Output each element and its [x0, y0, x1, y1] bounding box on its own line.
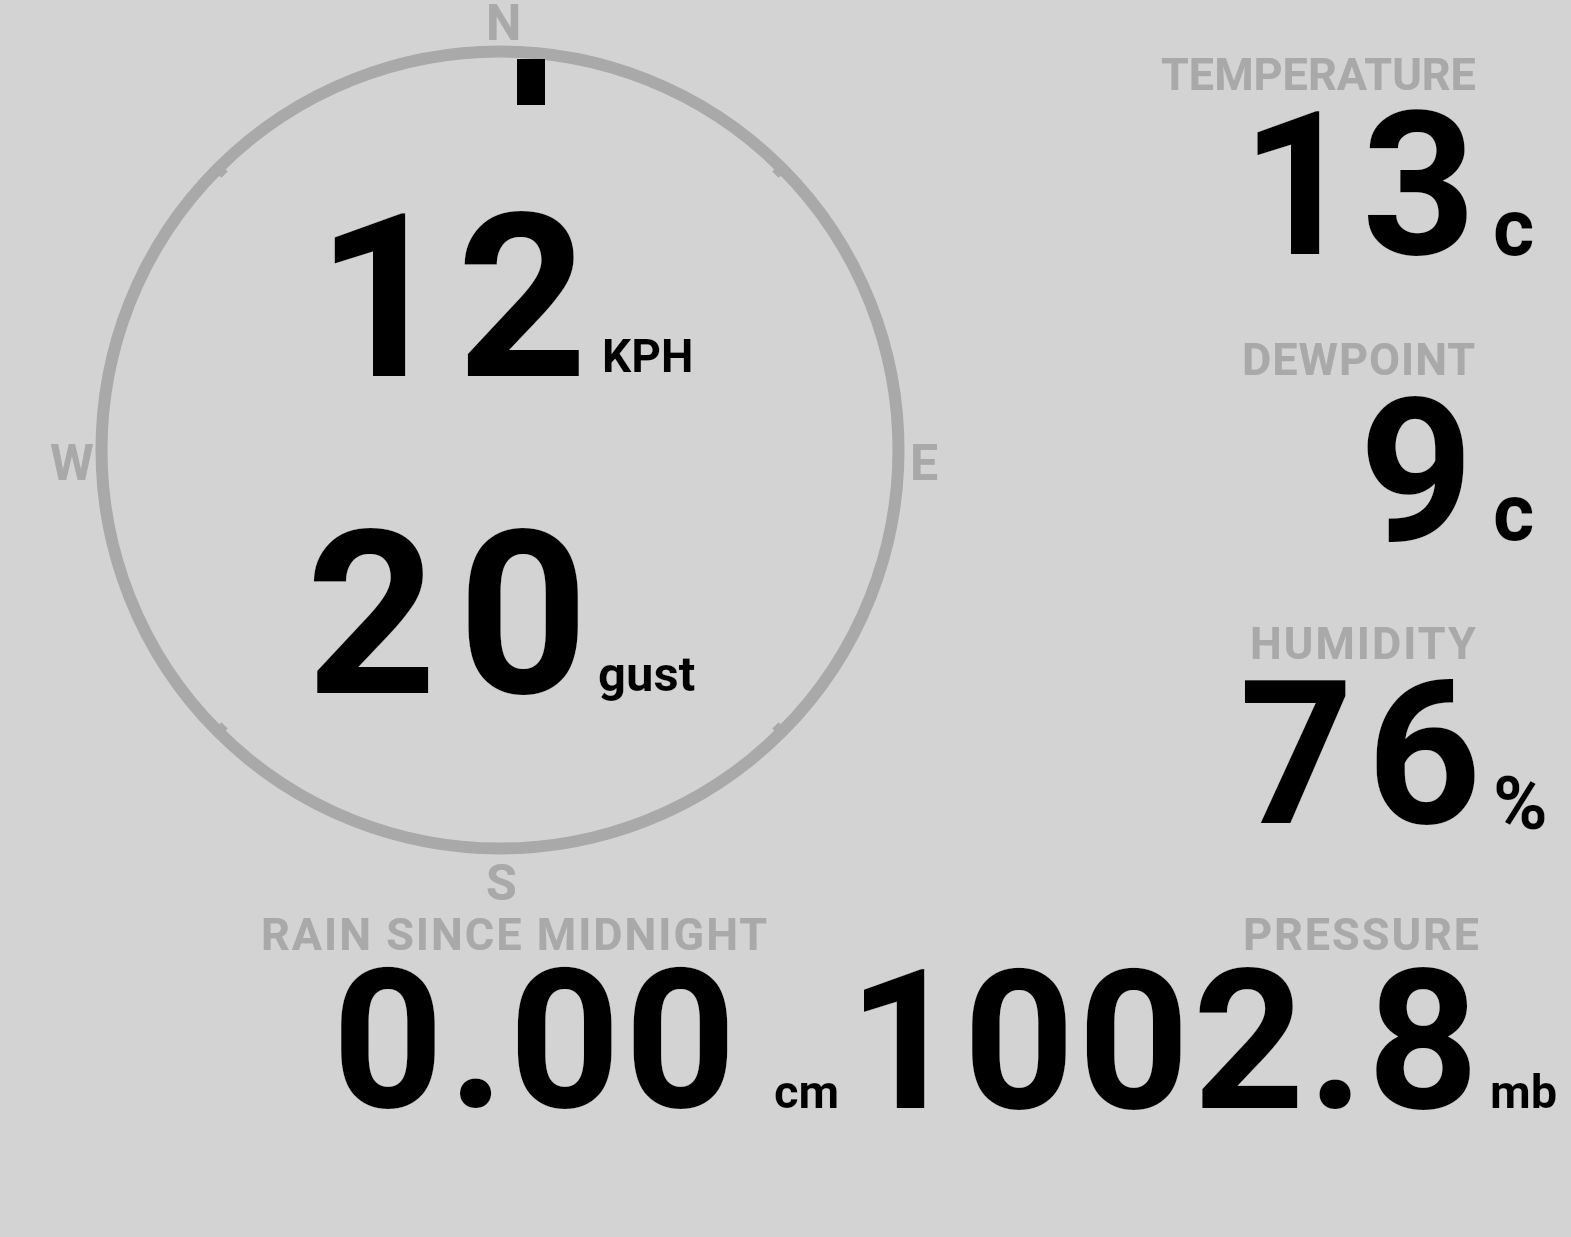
staticText: gust	[598, 646, 696, 703]
button[interactable]: Dew point 9 c	[1150, 330, 1570, 600]
staticText: mb	[1490, 1064, 1558, 1119]
staticText: 12	[316, 164, 598, 431]
staticText: N	[486, 0, 522, 53]
staticText: PRESSURE	[1243, 908, 1482, 961]
staticText: c	[1493, 182, 1535, 275]
staticText: 1002.8	[848, 927, 1483, 1156]
staticText: 76	[1239, 637, 1495, 871]
staticText: 0.00	[332, 926, 741, 1155]
button[interactable]: Wind 12 KPH, gusting 20	[95, 45, 905, 855]
staticText: RAIN SINCE MIDNIGHT	[261, 908, 770, 961]
button[interactable]: Pressure 1002.8 mb	[845, 905, 1570, 1120]
staticText: KPH	[602, 329, 694, 383]
button[interactable]: Temperature 13 c	[1150, 45, 1570, 315]
button[interactable]: Rain since midnight 0.00 cm	[255, 905, 845, 1120]
staticText: 9	[1359, 355, 1474, 589]
staticText: HUMIDITY	[1250, 617, 1478, 670]
staticText: DEWPOINT	[1242, 333, 1477, 386]
staticText: S	[486, 854, 517, 913]
staticText: W	[50, 434, 94, 493]
staticText: E	[910, 434, 939, 493]
button[interactable]: Humidity 76 %	[1150, 615, 1570, 885]
staticText: TEMPERATURE	[1161, 48, 1476, 101]
staticText: c	[1493, 467, 1535, 560]
staticText: cm	[774, 1064, 840, 1119]
staticText: %	[1493, 760, 1548, 847]
staticText: 20	[306, 481, 610, 748]
staticText: 13	[1241, 68, 1483, 302]
